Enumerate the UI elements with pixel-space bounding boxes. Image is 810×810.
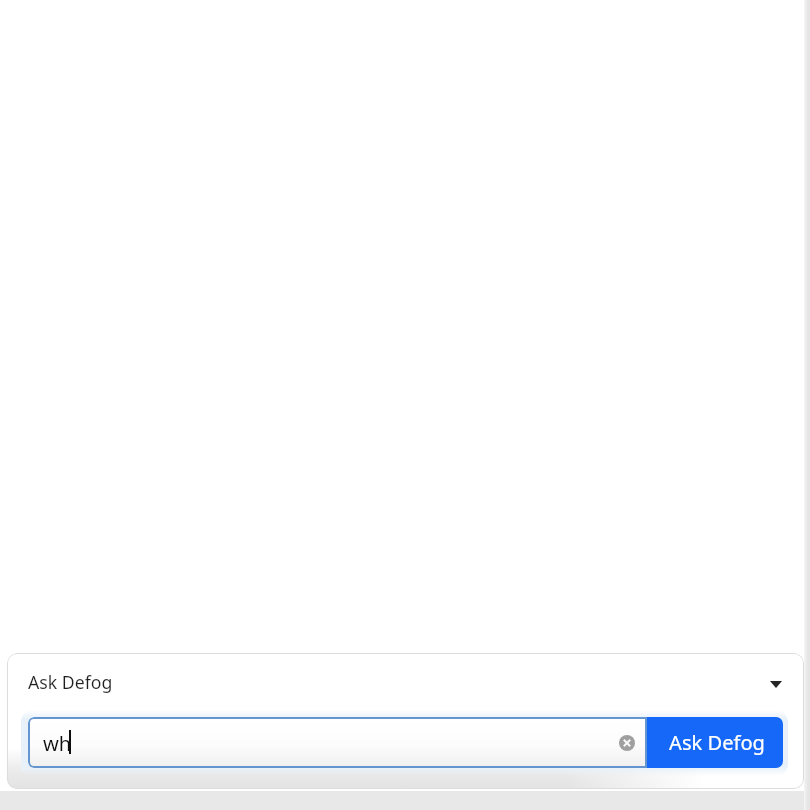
button[interactable]: Clear text: [619, 735, 635, 751]
staticText: Ask Defog: [669, 729, 765, 756]
button[interactable]: Ask Defog: [647, 717, 783, 768]
button[interactable]: Expand: [764, 670, 788, 694]
button[interactable]: Ask Defog: [7, 653, 804, 711]
button[interactable]: wh: [28, 717, 647, 768]
staticText: Ask Defog: [28, 670, 113, 694]
staticText: wh: [43, 729, 72, 757]
